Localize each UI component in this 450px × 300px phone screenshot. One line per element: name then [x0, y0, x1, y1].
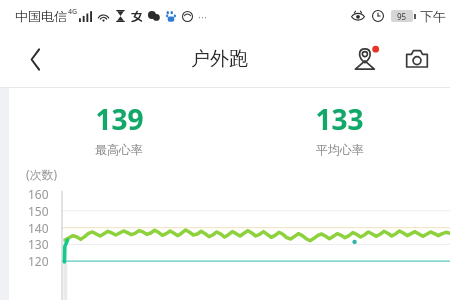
- staticText: 150: [28, 203, 49, 219]
- staticText: 95: [397, 11, 407, 22]
- staticText: (次数): [26, 166, 58, 182]
- staticText: 户外跑: [191, 47, 248, 71]
- staticText: 140: [28, 220, 49, 236]
- staticText: ···: [198, 9, 207, 24]
- button[interactable]: 轨迹地图: [346, 39, 386, 79]
- staticText: 133: [315, 100, 364, 138]
- button[interactable]: 139: [9, 100, 229, 157]
- button[interactable]: 拍照: [397, 39, 437, 79]
- staticText: 4G: [68, 7, 78, 17]
- staticText: 中国电信: [15, 8, 67, 24]
- staticText: 平均心率: [316, 142, 364, 157]
- staticText: 120: [28, 253, 49, 269]
- staticText: 160: [28, 186, 49, 202]
- staticText: 130: [28, 236, 49, 252]
- staticText: 下午: [420, 8, 446, 24]
- button[interactable]: 返回: [15, 39, 55, 79]
- staticText: 最高心率: [95, 142, 143, 157]
- staticText: 139: [95, 100, 144, 138]
- button[interactable]: 133: [229, 100, 450, 157]
